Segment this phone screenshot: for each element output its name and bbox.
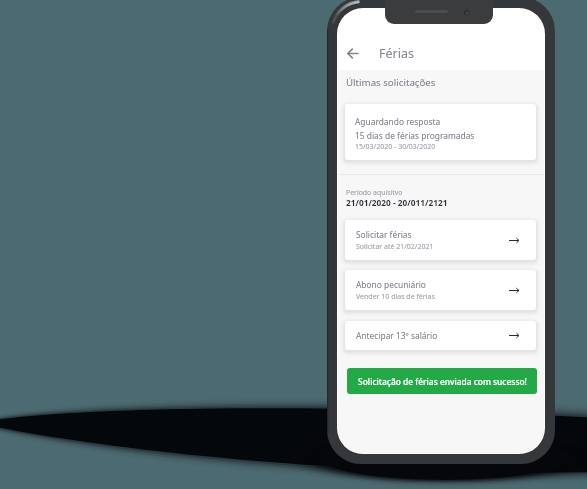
- button[interactable]: Antecipar 13º salário: [345, 321, 536, 350]
- staticText: Últimas solicitações: [346, 76, 436, 89]
- staticText: 15/03/2020 - 30/03/2020: [355, 142, 436, 152]
- other: Solicitar férias: [509, 237, 519, 244]
- button[interactable]: Solicitação de férias enviada com sucess…: [347, 368, 537, 394]
- staticText: Férias: [379, 45, 414, 62]
- other: Antecipar 13º salário: [509, 332, 519, 339]
- staticText: Solicitação de férias enviada com sucess…: [358, 376, 527, 387]
- staticText: 21/01/2020 - 20/011/2121: [346, 197, 448, 208]
- staticText: Vender 10 dias de férias: [356, 292, 435, 302]
- staticText: Antecipar 13º salário: [356, 330, 438, 341]
- button[interactable]: Solicitar férias: [345, 220, 536, 260]
- button[interactable]: Back: [341, 42, 364, 65]
- button[interactable]: Aguardando resposta: [345, 104, 536, 160]
- staticText: 15 dias de férias programadas: [355, 130, 475, 141]
- staticText: Solicitar férias: [356, 229, 412, 240]
- staticText: Aguardando resposta: [355, 116, 441, 127]
- staticText: Abono pecuniário: [356, 279, 426, 290]
- staticText: Período aquisitvo: [346, 188, 403, 197]
- other: Abono pecuniário: [509, 287, 519, 294]
- staticText: Solicitar até 21/02/2021: [356, 242, 434, 252]
- button[interactable]: Abono pecuniário: [345, 270, 536, 310]
